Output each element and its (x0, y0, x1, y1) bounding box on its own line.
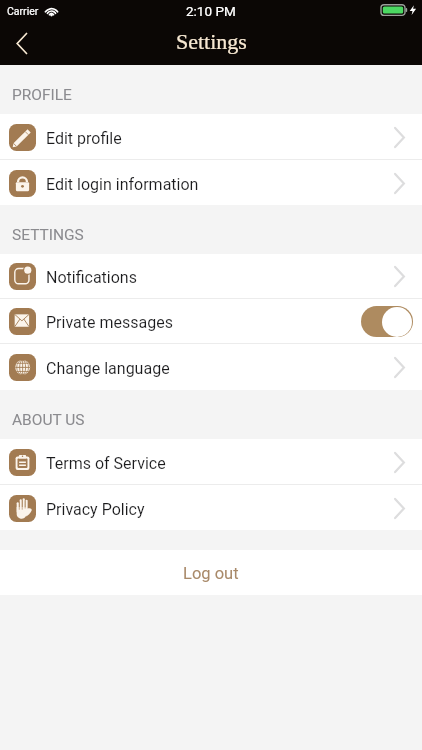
staticText: Edit login information (46, 175, 199, 194)
staticText: Notifications (46, 268, 137, 287)
button[interactable]: Back (0, 22, 44, 65)
button[interactable]: Log out (0, 550, 422, 595)
staticText: Settings (176, 29, 247, 53)
staticText: Terms of Service (46, 454, 166, 473)
button[interactable]: Change language (0, 345, 422, 390)
staticText: PROFILE (12, 86, 72, 104)
staticText: Carrier (7, 5, 39, 17)
staticText: 2:10 PM (186, 3, 236, 19)
staticText: Change language (46, 359, 170, 378)
button[interactable]: Privacy Policy (0, 485, 422, 531)
staticText: Edit profile (46, 129, 122, 148)
button[interactable]: Private messages toggle (361, 306, 413, 337)
button[interactable]: Edit login information (0, 160, 422, 206)
button[interactable]: Edit profile (0, 114, 422, 160)
button[interactable]: Terms of Service (0, 439, 422, 485)
button[interactable]: Notifications (0, 254, 422, 299)
button[interactable]: Private messages (0, 299, 422, 344)
staticText: SETTINGS (12, 226, 84, 244)
staticText: Privacy Policy (46, 500, 145, 519)
staticText: Private messages (46, 313, 173, 332)
staticText: ABOUT US (12, 411, 85, 429)
staticText: Log out (183, 564, 239, 583)
